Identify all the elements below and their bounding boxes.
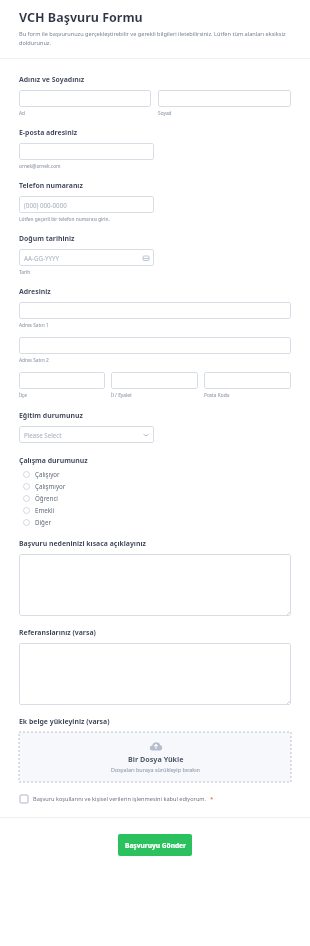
staticText: E-posta adresiniz — [19, 128, 78, 137]
staticText: Adres Satırı 2 — [19, 357, 49, 364]
staticText: Çalışma durumunuz — [19, 456, 88, 465]
staticText: Bu form ile başvurunuzu gerçekleştirebil… — [19, 30, 291, 46]
staticText: Tarih — [19, 269, 31, 276]
staticText: Soyad — [158, 110, 172, 117]
button[interactable] — [19, 372, 105, 389]
staticText: Ad — [19, 110, 26, 117]
staticText: Adınız ve Soyadınız — [19, 75, 85, 84]
staticText: AA-GG-YYYY — [24, 254, 143, 262]
staticText: Başvuru koşullarını ve kişisel verilerin… — [33, 795, 207, 803]
staticText: Adresiniz — [19, 287, 51, 296]
staticText: Başvuruyu Gönder — [125, 841, 186, 850]
staticText: * — [210, 795, 214, 803]
button[interactable] — [19, 90, 151, 107]
staticText: İlçe — [19, 392, 27, 399]
button[interactable] — [111, 372, 198, 389]
button[interactable]: Diğer — [19, 516, 291, 528]
button[interactable]: Emekli — [19, 504, 291, 516]
staticText: İl / Eyalet — [111, 392, 132, 399]
staticText: Eğitim durumunuz — [19, 411, 83, 420]
button[interactable]: Çalışmıyor — [19, 480, 291, 492]
button[interactable]: Çalışıyor — [19, 468, 291, 480]
staticText: Diğer — [35, 518, 51, 526]
staticText: Dosyaları buraya sürükleyip bırakın — [111, 766, 200, 773]
staticText: VCH Başvuru Formu — [19, 9, 143, 26]
staticText: Başvuru nedeninizi kısaca açıklayınız — [19, 539, 146, 548]
staticText: Öğrenci — [35, 494, 58, 502]
staticText: Adres Satırı 1 — [19, 322, 49, 329]
button[interactable]: Başvuru koşullarını ve kişisel verilerin… — [19, 795, 291, 803]
button[interactable] — [19, 554, 291, 616]
staticText: ornek@ornek.com — [19, 163, 61, 170]
button[interactable]: Bir Dosya Yükle — [19, 732, 291, 782]
button[interactable] — [19, 643, 291, 705]
staticText: Telefon numaranız — [19, 181, 83, 190]
staticText: Please Select — [24, 431, 143, 439]
staticText: Posta Kodu — [204, 392, 230, 399]
staticText: Bir Dosya Yükle — [128, 754, 184, 764]
staticText: Lütfen geçerli bir telefon numarası giri… — [19, 216, 110, 223]
staticText: Doğum tarihiniz — [19, 234, 75, 243]
button[interactable] — [158, 90, 291, 107]
button[interactable]: Öğrenci — [19, 492, 291, 504]
button[interactable]: AA-GG-YYYY — [19, 249, 154, 266]
button[interactable]: Başvuruyu Gönder — [118, 834, 192, 856]
staticText: (000) 000-0000 — [24, 201, 149, 209]
button[interactable] — [19, 337, 291, 354]
button[interactable] — [19, 302, 291, 319]
staticText: Çalışmıyor — [35, 482, 66, 490]
staticText: Emekli — [35, 506, 55, 514]
staticText: Ek belge yükleyiniz (varsa) — [19, 717, 110, 726]
button[interactable]: Please Select — [19, 426, 154, 443]
button[interactable] — [19, 143, 154, 160]
button[interactable]: (000) 000-0000 — [19, 196, 154, 213]
button[interactable] — [204, 372, 291, 389]
staticText: Çalışıyor — [35, 470, 60, 478]
staticText: Referanslarınız (varsa) — [19, 628, 96, 637]
